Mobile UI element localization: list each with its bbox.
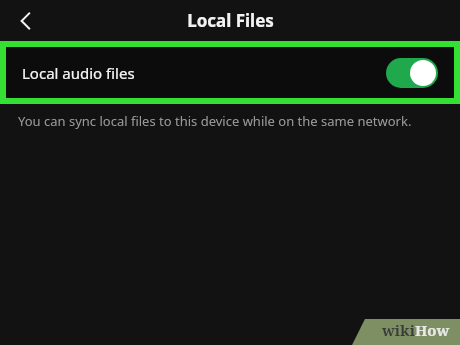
staticText: Local audio files: [22, 63, 135, 83]
staticText: Local Files: [187, 9, 274, 32]
button[interactable]: Local audio files toggle, on: [386, 58, 438, 88]
staticText: wiki: [382, 320, 415, 340]
staticText: You can sync local files to this device …: [18, 112, 412, 130]
button[interactable]: Back: [8, 3, 44, 39]
staticText: How: [415, 320, 450, 340]
button[interactable]: Local audio files: [6, 47, 454, 98]
